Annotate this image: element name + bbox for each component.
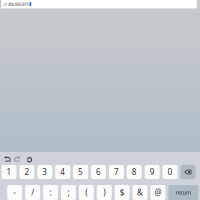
button[interactable]: Undo bbox=[1, 154, 12, 165]
button[interactable]: 1 bbox=[1, 165, 16, 179]
button[interactable]: 9 bbox=[145, 165, 160, 179]
staticText: 8 bbox=[132, 167, 137, 177]
button[interactable]: 3 bbox=[37, 165, 52, 179]
staticText: 2 bbox=[24, 167, 29, 177]
staticText: +1 202-555-0173 bbox=[3, 1, 30, 7]
button[interactable]: 6 bbox=[91, 165, 106, 179]
button[interactable]: ) bbox=[97, 185, 112, 200]
staticText: 3 bbox=[42, 167, 47, 177]
staticText: & bbox=[137, 187, 143, 198]
button[interactable]: Redo bbox=[12, 154, 23, 165]
staticText: 7 bbox=[114, 167, 119, 177]
staticText: 0 bbox=[168, 167, 173, 177]
button[interactable]: 7 bbox=[109, 165, 124, 179]
staticText: 6 bbox=[96, 167, 101, 177]
button[interactable]: - bbox=[7, 185, 22, 200]
button[interactable]: Delete bbox=[180, 165, 195, 179]
staticText: : bbox=[49, 187, 51, 198]
staticText: ) bbox=[103, 187, 105, 198]
button[interactable]: : bbox=[43, 185, 58, 200]
staticText: 9 bbox=[150, 167, 155, 177]
staticText: - bbox=[13, 187, 16, 198]
button[interactable]: 8 bbox=[127, 165, 142, 179]
button[interactable]: / bbox=[25, 185, 40, 200]
button[interactable]: ( bbox=[79, 185, 94, 200]
button[interactable]: return bbox=[168, 185, 198, 200]
staticText: return bbox=[176, 189, 191, 196]
button[interactable]: @ bbox=[150, 185, 165, 200]
staticText: ( bbox=[85, 187, 87, 198]
button[interactable]: 2 bbox=[19, 165, 34, 179]
staticText: / bbox=[31, 187, 34, 198]
button[interactable]: 0 bbox=[163, 165, 178, 179]
button[interactable]: Paste bbox=[23, 154, 34, 165]
button[interactable]: $ bbox=[115, 185, 130, 200]
button[interactable]: 5 bbox=[73, 165, 88, 179]
staticText: $ bbox=[120, 187, 125, 198]
staticText: 1 bbox=[6, 167, 11, 177]
staticText: ; bbox=[67, 187, 69, 198]
staticText: 5 bbox=[78, 167, 83, 177]
button[interactable]: ; bbox=[61, 185, 76, 200]
button[interactable]: & bbox=[133, 185, 148, 200]
staticText: 4 bbox=[60, 167, 65, 177]
button[interactable]: 4 bbox=[55, 165, 70, 179]
staticText: @ bbox=[154, 187, 161, 198]
